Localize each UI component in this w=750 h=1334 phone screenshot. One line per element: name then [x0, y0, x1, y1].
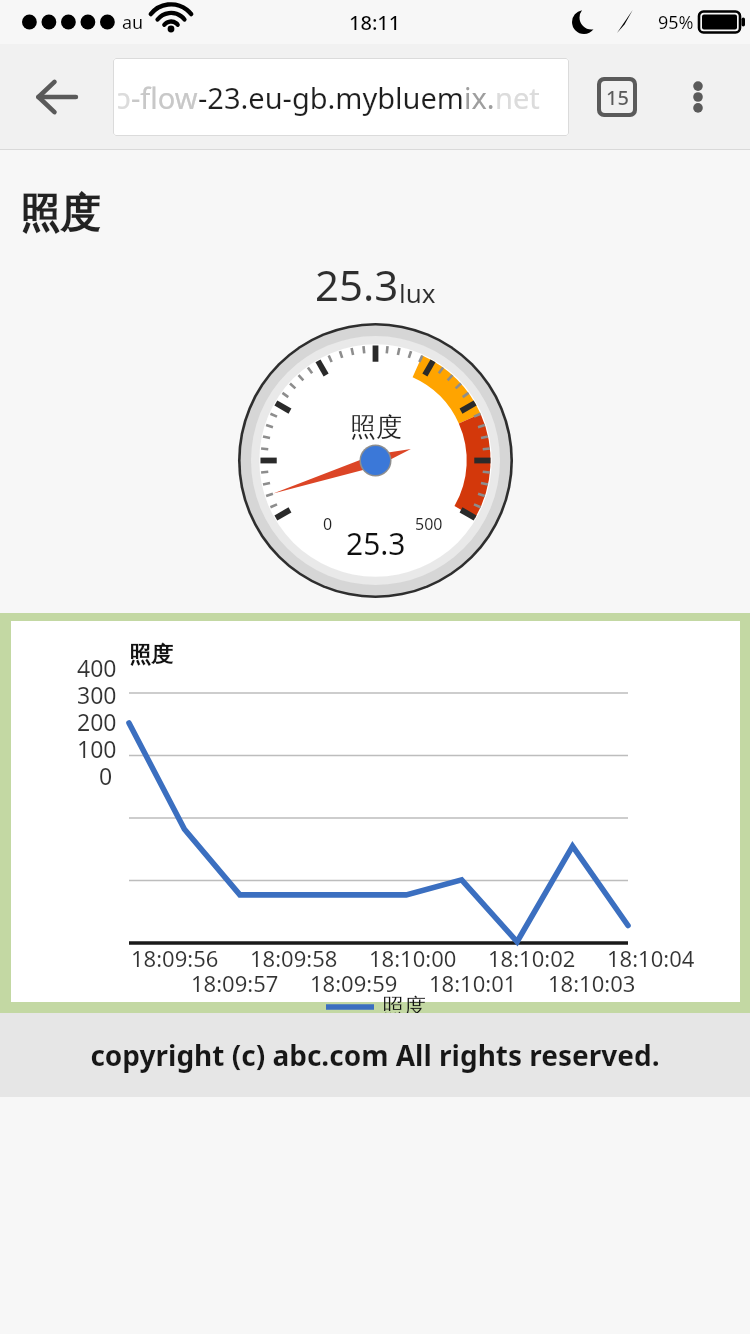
staticText: -23.eu-gb.mybluem: [198, 78, 464, 117]
button[interactable]: 照度: [11, 621, 740, 1002]
staticText: 95%: [658, 10, 694, 35]
button[interactable]: Tabs, 15 open: [585, 65, 649, 129]
staticText: net: [495, 78, 540, 117]
staticText: 0: [323, 513, 333, 535]
staticText: lux: [399, 275, 436, 310]
staticText: 照度: [129, 641, 173, 669]
staticText: 18:09:59: [310, 968, 398, 998]
staticText: ɔ: [117, 78, 131, 117]
button[interactable]: Back: [22, 62, 92, 132]
staticText: 300: [77, 679, 117, 710]
staticText: 照度: [350, 411, 402, 444]
staticText: ix.: [464, 78, 495, 117]
staticText: 18:09:56: [131, 943, 219, 973]
staticText: 18:10:03: [548, 968, 636, 998]
button[interactable]: More options: [666, 65, 730, 129]
staticText: 500: [415, 513, 443, 535]
staticText: 18:09:58: [250, 943, 338, 973]
staticText: 照度: [20, 188, 100, 238]
staticText: -flow: [131, 78, 198, 117]
staticText: 照度: [382, 993, 426, 1021]
staticText: 18:10:00: [369, 943, 457, 973]
staticText: 25.3: [346, 523, 406, 564]
staticText: copyright (c) abc.com All rights reserve…: [90, 1036, 660, 1074]
staticText: 100: [77, 733, 117, 764]
staticText: 25.3: [315, 256, 399, 313]
button[interactable]: ɔ: [113, 58, 569, 136]
staticText: 200: [77, 706, 117, 737]
staticText: au: [122, 10, 144, 35]
staticText: 400: [77, 652, 117, 683]
staticText: 18:11: [349, 9, 401, 36]
staticText: 0: [99, 760, 113, 791]
staticText: 18:10:01: [429, 968, 517, 998]
staticText: 18:09:57: [191, 968, 279, 998]
staticText: 18:10:04: [607, 943, 695, 973]
staticText: 18:10:02: [488, 943, 576, 973]
staticText: 15: [606, 84, 629, 111]
